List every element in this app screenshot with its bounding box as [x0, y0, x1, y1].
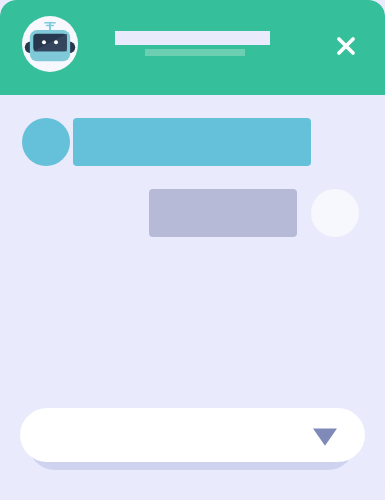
button[interactable]: Your avatar	[311, 189, 359, 237]
button[interactable]: Sender avatar	[22, 118, 70, 166]
button[interactable]: Close	[330, 30, 362, 62]
button[interactable]	[73, 118, 311, 166]
button[interactable]: Send	[310, 420, 340, 450]
button[interactable]: Message input	[20, 408, 365, 462]
button[interactable]: Assistant avatar	[22, 16, 78, 72]
